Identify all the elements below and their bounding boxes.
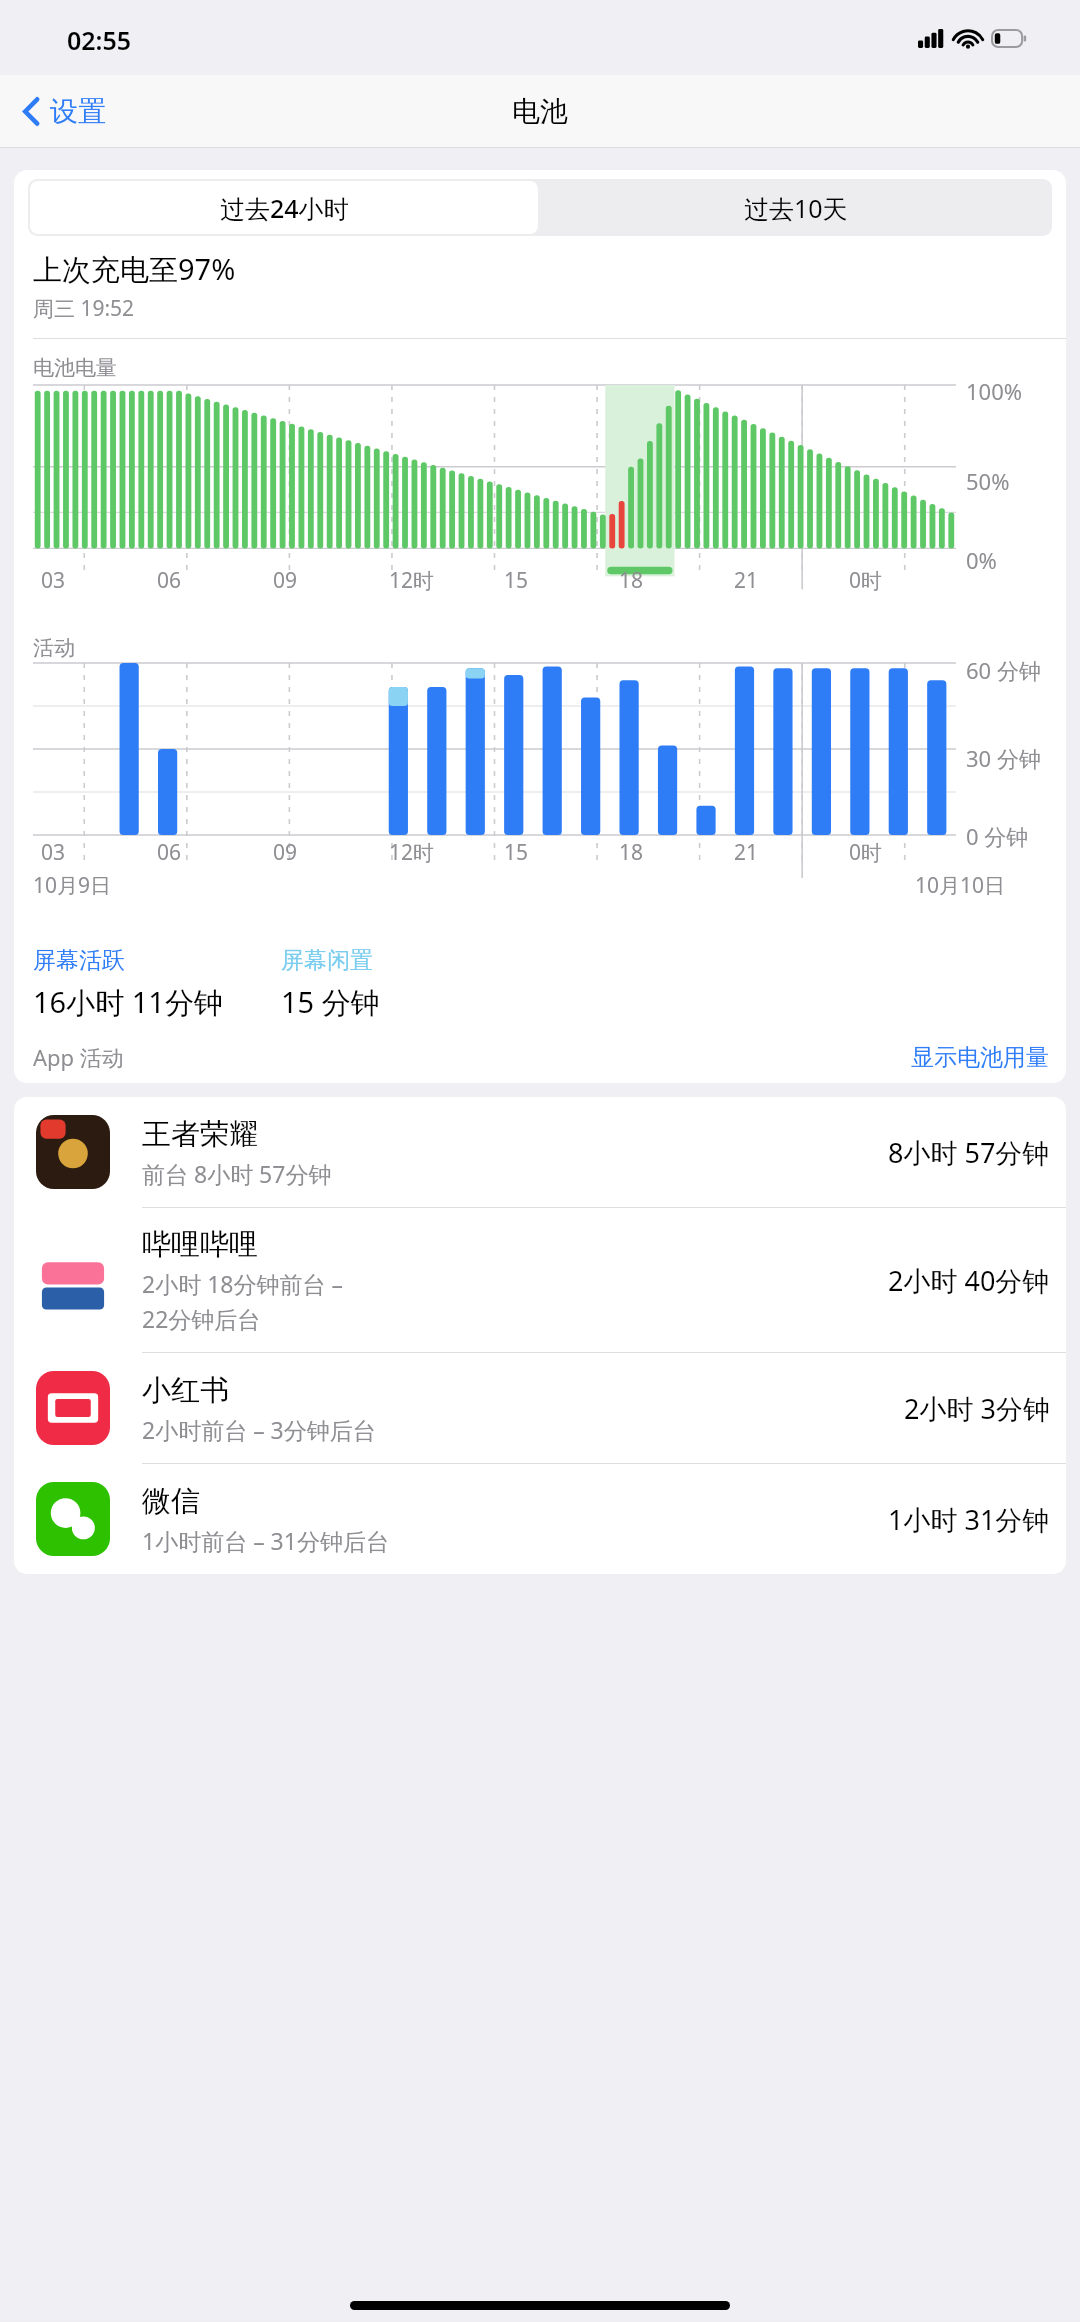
staticText: 09: [273, 566, 298, 595]
staticText: 哔哩哔哩: [142, 1226, 258, 1263]
staticText: 0 分钟: [966, 821, 1029, 851]
staticText: 过去24小时: [220, 191, 349, 225]
staticText: 过去10天: [744, 191, 848, 225]
button[interactable]: 过去24小时: [30, 181, 538, 234]
staticText: 30 分钟: [966, 743, 1041, 773]
staticText: 上次充电至97%: [33, 249, 236, 289]
staticText: 06: [157, 566, 182, 595]
staticText: 50%: [966, 466, 1010, 496]
staticText: 1小时 31分钟: [888, 1501, 1050, 1538]
staticText: 显示电池用量: [911, 1043, 1049, 1072]
staticText: App 活动: [33, 1042, 124, 1072]
staticText: 03: [41, 838, 66, 867]
staticText: 0时: [849, 838, 883, 867]
staticText: 21: [734, 838, 759, 867]
button[interactable]: 王者荣耀: [14, 1097, 1066, 1207]
staticText: 12时: [389, 838, 435, 867]
staticText: 10月9日: [33, 871, 112, 900]
staticText: 王者荣耀: [142, 1116, 258, 1153]
staticText: 周三 19:52: [33, 294, 135, 323]
staticText: 0时: [849, 566, 883, 595]
staticText: 15: [504, 838, 529, 867]
staticText: 10月10日: [915, 871, 1006, 900]
staticText: 18: [619, 566, 644, 595]
staticText: 18: [619, 838, 644, 867]
staticText: 8小时 57分钟: [888, 1134, 1050, 1171]
staticText: 12时: [389, 566, 435, 595]
staticText: 设置: [50, 94, 106, 129]
staticText: 21: [734, 566, 759, 595]
button[interactable]: 显示电池用量: [911, 1043, 1049, 1072]
staticText: 屏幕闲置: [281, 946, 373, 975]
staticText: 16小时 11分钟: [33, 982, 223, 1022]
staticText: 09: [273, 838, 298, 867]
staticText: 2小时 3分钟: [904, 1390, 1050, 1427]
staticText: 0%: [966, 545, 997, 575]
staticText: 2小时 18分钟前台 –: [142, 1268, 343, 1299]
staticText: 22分钟后台: [142, 1303, 261, 1334]
staticText: 02:55: [67, 23, 132, 57]
staticText: 屏幕活跃: [33, 946, 125, 975]
staticText: 2小时 40分钟: [888, 1262, 1050, 1299]
staticText: 15: [504, 566, 529, 595]
button[interactable]: 过去10天: [540, 179, 1052, 236]
staticText: 前台 8小时 57分钟: [142, 1158, 332, 1189]
staticText: 06: [157, 838, 182, 867]
staticText: 小红书: [142, 1372, 229, 1409]
staticText: 微信: [142, 1483, 200, 1520]
button[interactable]: 小红书: [14, 1353, 1066, 1463]
staticText: 1小时前台 – 31分钟后台: [142, 1525, 389, 1556]
staticText: 活动: [33, 635, 75, 661]
button[interactable]: 设置: [0, 85, 122, 138]
staticText: 03: [41, 566, 66, 595]
staticText: 100%: [966, 376, 1023, 406]
button[interactable]: 微信: [14, 1464, 1066, 1574]
staticText: 15 分钟: [281, 982, 380, 1022]
staticText: 电池电量: [33, 355, 117, 381]
button[interactable]: 哔哩哔哩: [14, 1208, 1066, 1352]
staticText: 2小时前台 – 3分钟后台: [142, 1414, 376, 1445]
staticText: 60 分钟: [966, 655, 1041, 685]
staticText: 电池: [512, 94, 568, 129]
